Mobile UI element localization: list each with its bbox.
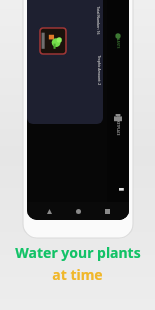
- staticText: MARKETPLACE: [116, 114, 120, 136]
- staticText: Trophic Amount: 2: [96, 55, 101, 85]
- button[interactable]: Home: [71, 204, 85, 218]
- button[interactable]: Hand watering: 00/00/0000 12:34:46 UTC: [27, 0, 103, 124]
- staticText: PLANTS: [116, 37, 120, 49]
- button[interactable]: Back: [42, 204, 56, 218]
- button[interactable]: Plants: [107, 8, 129, 68]
- staticText: Water your plants: [15, 243, 141, 262]
- staticText: Total Number: 16: [95, 6, 100, 34]
- button[interactable]: Marketplace: [107, 84, 129, 156]
- other: Plants: [114, 32, 122, 40]
- button[interactable]: Recent apps: [100, 204, 114, 218]
- staticText: at time: [52, 265, 103, 284]
- other: Marketplace: [114, 114, 122, 122]
